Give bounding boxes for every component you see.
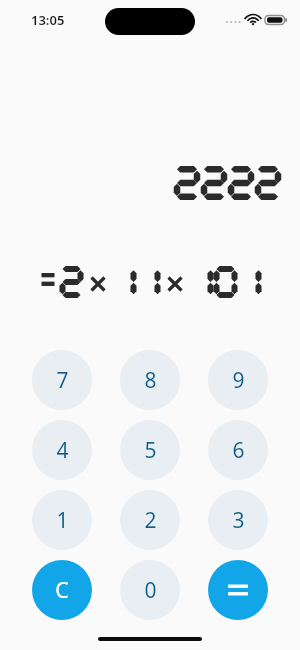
button[interactable]: 4: [32, 420, 92, 480]
staticText: 5: [144, 436, 157, 465]
button[interactable]: 7: [32, 350, 92, 410]
button[interactable]: 2: [120, 490, 180, 550]
staticText: C: [55, 576, 69, 605]
staticText: 6: [232, 436, 245, 465]
button[interactable]: 3: [208, 490, 268, 550]
button[interactable]: 9: [208, 350, 268, 410]
button[interactable]: 6: [208, 420, 268, 480]
staticText: 8: [144, 366, 157, 395]
staticText: 7: [56, 366, 69, 395]
staticText: 3: [232, 506, 245, 535]
button[interactable]: 1: [32, 490, 92, 550]
button[interactable]: Equals: [208, 560, 268, 620]
staticText: 4: [56, 436, 69, 465]
staticText: 13:05: [31, 11, 65, 29]
staticText: 2: [144, 506, 157, 535]
staticText: 9: [232, 366, 245, 395]
button[interactable]: 0: [120, 560, 180, 620]
staticText: 0: [144, 576, 157, 605]
button[interactable]: C: [32, 560, 92, 620]
button[interactable]: 5: [120, 420, 180, 480]
button[interactable]: 8: [120, 350, 180, 410]
staticText: 1: [56, 506, 69, 535]
